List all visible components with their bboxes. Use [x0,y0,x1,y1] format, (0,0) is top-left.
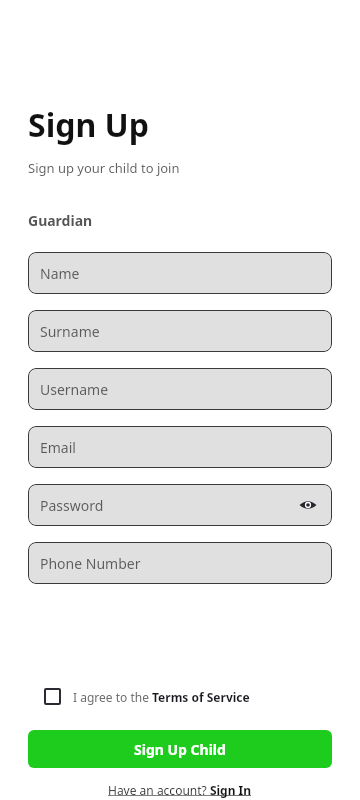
button[interactable]: Phone Number [28,542,332,584]
button[interactable]: Name [28,252,332,294]
staticText: Sign up your child to join [28,159,180,177]
staticText: Password [40,496,104,515]
staticText: Email [40,438,76,457]
button[interactable]: Password [28,484,332,526]
button[interactable]: Surname [28,310,332,352]
button[interactable]: Username [28,368,332,410]
button[interactable]: Have an account? Sign In [28,782,332,798]
staticText: Phone Number [40,554,141,573]
button[interactable]: Show password [296,493,320,517]
staticText: Sign Up Child [134,740,226,759]
button[interactable]: Email [28,426,332,468]
staticText: I agree to the Terms of Service [73,689,250,705]
staticText: Name [40,264,80,283]
staticText: Guardian [28,211,93,230]
staticText: Have an account? Sign In [108,782,252,798]
staticText: Username [40,380,109,399]
button[interactable]: Sign Up Child [28,730,332,768]
staticText: Surname [40,322,100,341]
button[interactable]: I agree to the Terms of Service [44,688,332,705]
staticText: Sign Up [28,103,149,147]
